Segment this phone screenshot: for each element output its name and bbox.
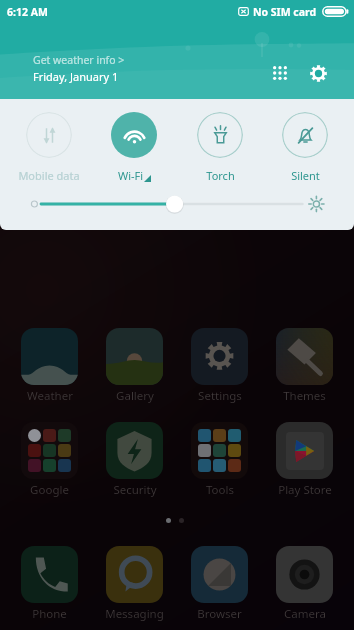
button[interactable]: Settings xyxy=(179,328,260,404)
staticText: 6:12 AM xyxy=(7,5,48,19)
staticText: Settings xyxy=(198,388,242,404)
button[interactable]: Tools xyxy=(179,422,260,498)
staticText: Google xyxy=(30,482,69,498)
staticText: Themes xyxy=(283,388,326,404)
staticText: Tools xyxy=(206,482,234,498)
button[interactable]: Mobile data xyxy=(12,112,86,183)
button[interactable]: Torch xyxy=(183,112,257,183)
button[interactable]: Settings xyxy=(303,58,333,88)
button[interactable]: Get weather info > xyxy=(33,53,125,84)
staticText: Messaging xyxy=(105,606,164,622)
staticText: Mobile data xyxy=(18,168,80,183)
button[interactable]: Security xyxy=(94,422,175,498)
staticText: Torch xyxy=(206,168,235,183)
staticText: Phone xyxy=(32,606,67,622)
staticText: Friday, January 1 xyxy=(33,69,119,84)
button[interactable]: Brightness xyxy=(0,193,354,215)
staticText: Silent xyxy=(291,168,320,183)
button[interactable]: Themes xyxy=(264,328,345,404)
button[interactable]: Wi-Fi xyxy=(97,112,171,183)
staticText: Camera xyxy=(284,606,326,622)
staticText: Wi-Fi xyxy=(118,168,144,183)
staticText: Security xyxy=(113,482,157,498)
button[interactable]: Google xyxy=(9,422,90,498)
button[interactable]: Messaging xyxy=(94,546,175,622)
button[interactable]: Gallery xyxy=(94,328,175,404)
button[interactable]: Phone xyxy=(9,546,90,622)
staticText: Browser xyxy=(197,606,242,622)
button[interactable]: Weather xyxy=(9,328,90,404)
staticText: Gallery xyxy=(116,388,154,404)
button[interactable]: Edit tiles xyxy=(265,58,295,88)
staticText: Weather xyxy=(27,388,73,404)
button[interactable]: Play Store xyxy=(264,422,345,498)
staticText: Get weather info > xyxy=(33,53,125,67)
button[interactable]: Browser xyxy=(179,546,260,622)
staticText: No SIM card xyxy=(253,5,317,19)
staticText: Play Store xyxy=(278,482,332,498)
button[interactable]: Silent xyxy=(268,112,342,183)
button[interactable]: Camera xyxy=(264,546,345,622)
